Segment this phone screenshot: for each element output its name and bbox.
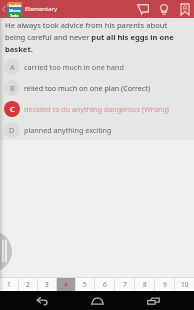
button[interactable]: C [0,98,194,119]
staticText: English [9,3,21,7]
button[interactable]: 4 [57,278,75,291]
button[interactable]: 8 [135,278,154,291]
staticText: 5 [83,280,87,289]
button[interactable]: 9 [155,278,174,291]
staticText: relied too much on one plan (Correct) [24,83,151,93]
button[interactable]: Back [28,291,56,310]
staticText: A [10,62,15,72]
staticText: Tests [10,13,19,17]
staticText: 3 [45,280,49,289]
staticText: Elementary [25,5,58,13]
staticText: Idioms [9,8,21,12]
staticText: 7 [123,280,127,289]
staticText: decided to do anything dangerous (Wrong) [24,104,170,114]
staticText: C [10,104,15,114]
button[interactable]: Comments [135,0,150,18]
button[interactable]: D [0,119,194,140]
button[interactable]: A [0,56,194,77]
button[interactable]: English Idioms Tests [7,2,22,17]
staticText: 2 [26,280,30,289]
staticText: carried too much in one hand [24,62,124,72]
button[interactable]: 7 [115,278,134,291]
staticText: 10 [181,280,189,289]
staticText: B [10,83,15,93]
staticText: 4 [64,280,68,289]
button[interactable]: 10 [175,278,194,291]
button[interactable]: Bookmark [177,0,192,18]
button[interactable]: 3 [38,278,56,291]
staticText: 8 [143,280,147,289]
staticText: 9 [163,280,167,289]
button[interactable]: Recents [139,291,167,310]
button[interactable]: Home [83,291,111,310]
staticText: 6 [103,280,107,289]
staticText: planned anything exciting [24,125,112,135]
button[interactable]: 2 [19,278,37,291]
button[interactable]: B [0,77,194,98]
staticText: He always took advice from his parents a… [5,20,189,54]
staticText: D [9,125,15,135]
button[interactable]: 5 [76,278,94,291]
button[interactable]: 6 [95,278,114,291]
staticText: 1 [7,280,11,289]
button[interactable]: Hint [156,0,171,18]
button[interactable]: Pause [0,231,12,272]
button[interactable]: 1 [0,278,18,291]
